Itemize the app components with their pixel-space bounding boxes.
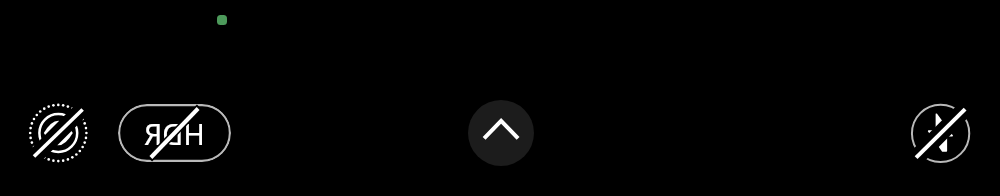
button[interactable]: Flash off [904, 97, 976, 169]
button[interactable]: HDR off [118, 104, 231, 162]
button[interactable]: Night Sight off [22, 97, 94, 169]
staticText: HDR [144, 114, 205, 153]
button[interactable]: Show more camera options [468, 100, 534, 166]
